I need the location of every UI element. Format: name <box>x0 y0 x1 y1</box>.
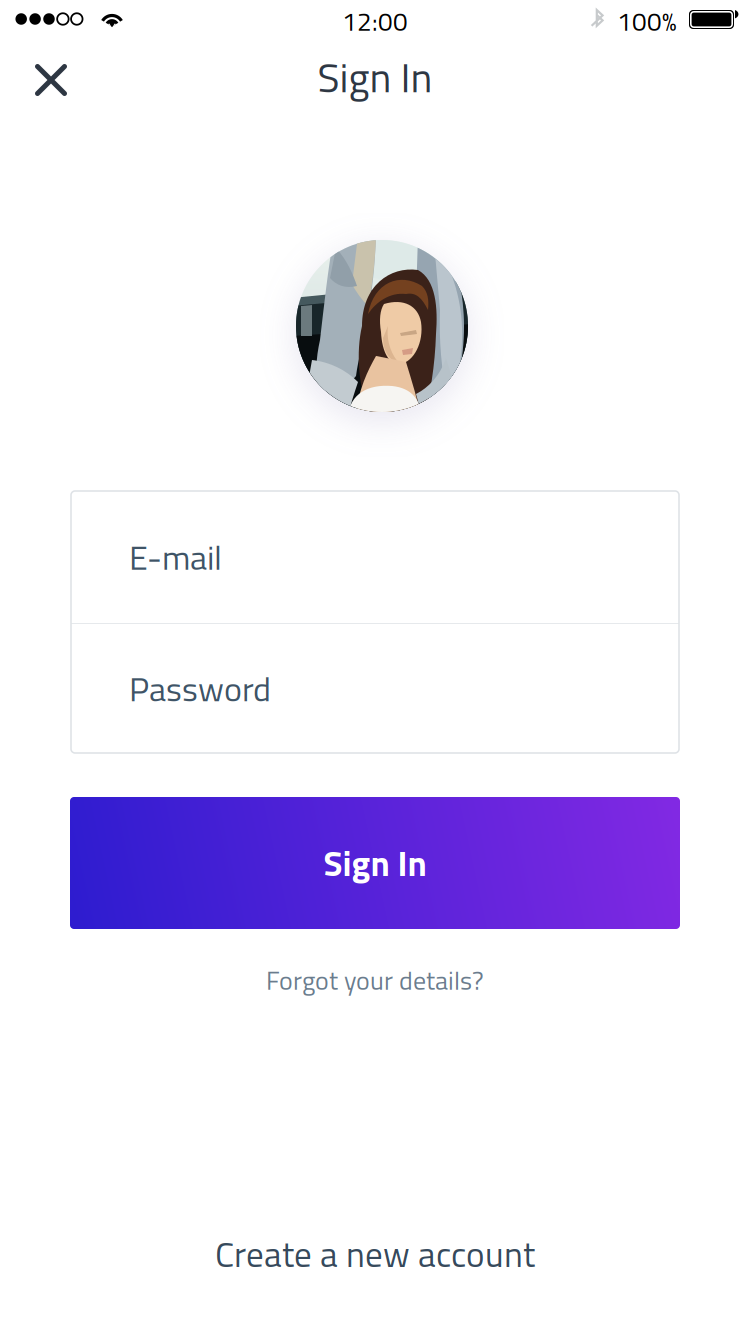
staticText: 12:00 <box>342 1 408 41</box>
staticText: Create a new account <box>215 1227 535 1281</box>
staticText: Password <box>129 663 271 714</box>
staticText: Sign In <box>317 46 432 108</box>
staticText: 100% <box>617 1 677 41</box>
button[interactable]: Close <box>13 42 89 118</box>
button[interactable]: Forgot your details? <box>225 952 525 1008</box>
staticText: Forgot your details? <box>266 960 484 1000</box>
staticText: E-mail <box>129 531 222 583</box>
button[interactable]: Sign In <box>70 797 680 929</box>
staticText: Sign In <box>323 836 426 889</box>
button[interactable]: Create a new account <box>165 1219 585 1289</box>
